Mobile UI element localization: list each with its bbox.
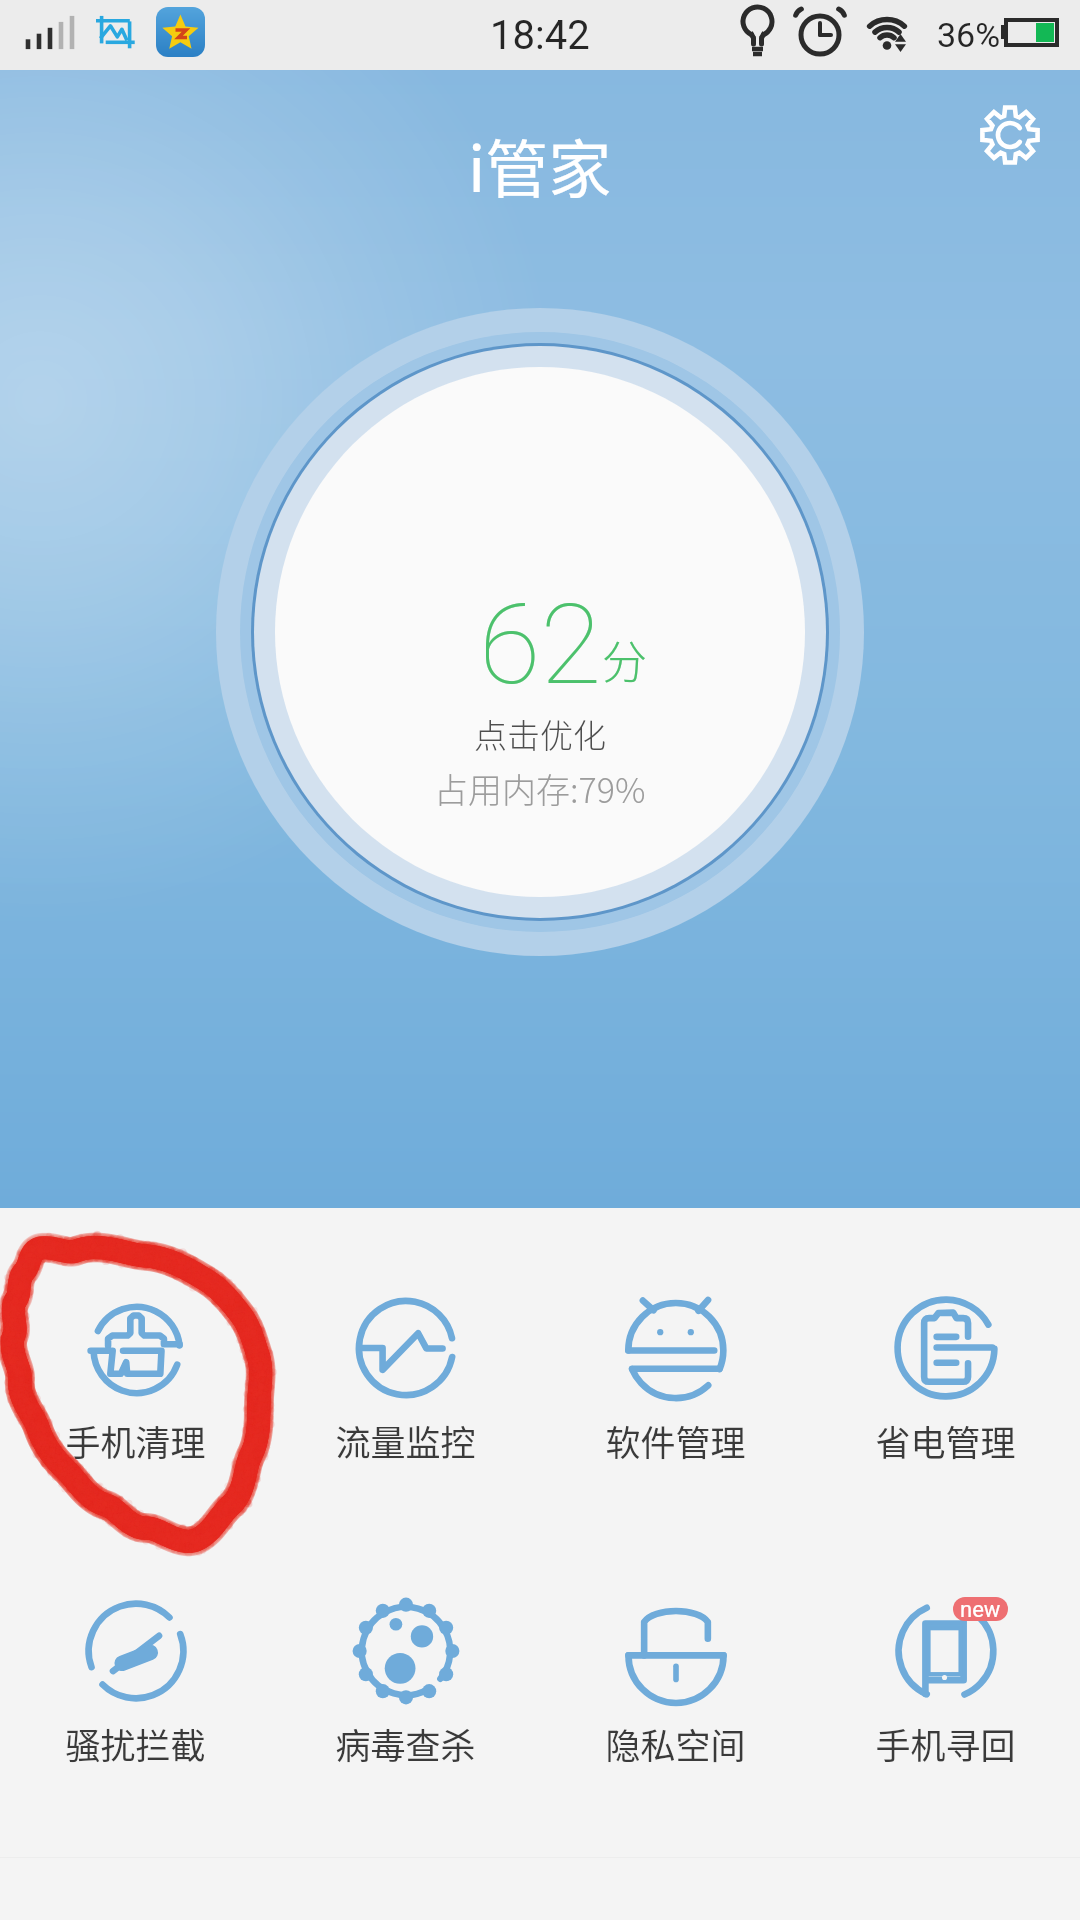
staticText: 省电管理: [875, 1415, 1016, 1466]
staticText: 18:42: [490, 12, 590, 59]
button[interactable]: new: [810, 1508, 1080, 1808]
staticText: 点击优化: [474, 710, 606, 758]
staticText: 占用内存:79%: [434, 764, 646, 813]
button[interactable]: 省电管理: [810, 1208, 1080, 1508]
button[interactable]: 62: [215, 307, 865, 957]
button[interactable]: 手机清理: [0, 1208, 270, 1508]
staticText: 62: [479, 579, 602, 710]
staticText: 36%: [937, 15, 1001, 55]
staticText: i管家: [468, 119, 612, 210]
staticText: new: [960, 1597, 1001, 1621]
staticText: 病毒查杀: [335, 1718, 476, 1769]
button[interactable]: 隐私空间: [540, 1508, 810, 1808]
staticText: 分: [602, 627, 648, 692]
staticText: 手机清理: [65, 1415, 206, 1466]
staticText: 隐私空间: [605, 1718, 746, 1769]
button[interactable]: 软件管理: [540, 1208, 810, 1508]
staticText: 软件管理: [605, 1415, 746, 1466]
button[interactable]: 骚扰拦截: [0, 1508, 270, 1808]
button[interactable]: Settings: [957, 82, 1062, 187]
staticText: 流量监控: [335, 1415, 476, 1466]
button[interactable]: 流量监控: [270, 1208, 540, 1508]
staticText: 骚扰拦截: [65, 1718, 206, 1769]
staticText: 手机寻回: [875, 1718, 1016, 1769]
button[interactable]: 病毒查杀: [270, 1508, 540, 1808]
